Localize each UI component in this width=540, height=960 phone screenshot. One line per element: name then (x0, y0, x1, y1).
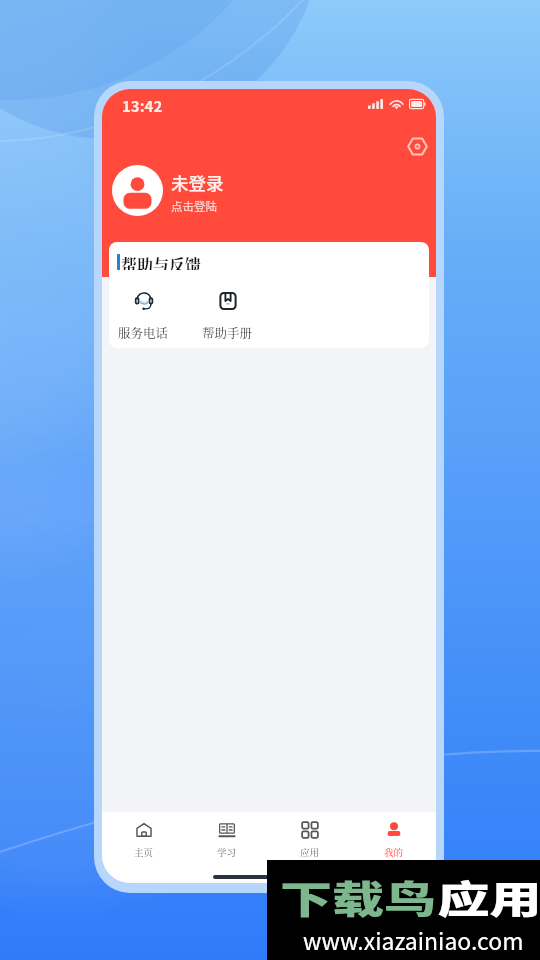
button[interactable]: 学习 (185, 822, 268, 859)
staticText: 下载鸟 (280, 869, 437, 924)
staticText: 服务电话 (118, 324, 169, 342)
button[interactable]: Scan code (402, 131, 432, 161)
staticText: www.xiazainiao.com (303, 923, 524, 956)
staticText: 帮助手册 (202, 324, 253, 342)
staticText: 主页 (134, 845, 154, 859)
staticText: 未登录 (171, 170, 224, 195)
button[interactable]: 服务电话 (115, 291, 172, 342)
staticText: 帮助与反馈 (121, 253, 202, 270)
button[interactable]: 未登录 (112, 164, 224, 216)
button[interactable]: 帮助与反馈 (117, 253, 202, 270)
staticText: 13:42 (122, 95, 163, 117)
staticText: 点击登陆 (171, 198, 217, 215)
staticText: 应用 (300, 845, 320, 859)
staticText: 我的 (384, 845, 404, 859)
button[interactable]: 主页 (102, 822, 185, 859)
staticText: 学习 (217, 845, 237, 859)
staticText: 应用 (437, 869, 540, 924)
button[interactable]: 我的 (352, 822, 436, 859)
button[interactable]: 帮助手册 (199, 291, 256, 342)
button[interactable]: 应用 (268, 822, 352, 859)
